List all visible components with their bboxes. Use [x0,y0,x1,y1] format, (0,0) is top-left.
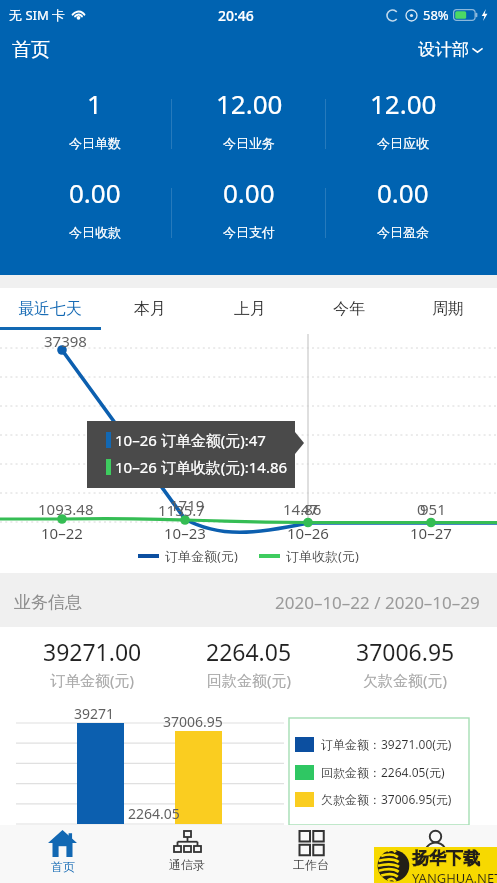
button[interactable]: 最近七天 [0,288,100,330]
staticText: 回款金额(元) [207,670,292,690]
staticText: 20:46 [218,6,254,25]
staticText: 1093.48 [38,499,94,519]
staticText: 订单收款(元) [286,547,359,565]
staticText: 首页 [51,859,75,874]
button[interactable]: 今年 [299,288,398,330]
staticText: 回款金额：2264.05(元) [321,764,445,780]
button[interactable]: 2264.05 [171,636,327,690]
staticText: 通信录 [169,857,205,872]
staticText: 订单金额(元) [50,670,135,690]
staticText: 本月 [134,299,166,319]
staticText: 951 [420,499,446,519]
staticText: 周期 [432,299,464,319]
button[interactable]: 39271.00 [14,636,171,690]
button[interactable]: 1 [17,86,172,158]
staticText: 上月 [234,299,266,319]
staticText: 无 SIM 卡 [9,6,66,24]
button[interactable]: 上月 [200,288,299,330]
staticText: 今日业务 [223,135,275,151]
staticText: 0.00 [69,175,121,210]
staticText: 37006.95 [356,636,455,667]
button[interactable]: 0.00 [326,175,480,247]
staticText: 订单金额：39271.00(元) [321,736,452,752]
staticText: 工作台 [293,857,329,872]
staticText: 欠款金额：37006.95(元) [321,791,452,807]
staticText: 10–27 [410,523,452,543]
staticText: 今日支付 [223,224,275,240]
staticText: 47 [301,499,319,519]
staticText: 今年 [333,299,365,319]
staticText: 39271.00 [43,636,142,667]
staticText: 业务信息 [14,592,82,613]
staticText: 12.00 [370,86,437,121]
staticText: 设计部 [418,39,469,60]
staticText: 订单金额(元) [165,547,238,565]
staticText: 10–26 订单收款(元):14.86 [115,457,288,477]
staticText: 首页 [12,38,50,62]
staticText: 0 [417,499,426,519]
staticText: YANGHUA.NET [412,869,497,883]
button[interactable]: 首页 [0,38,60,62]
staticText: 0.00 [223,175,275,210]
staticText: 最近七天 [18,299,82,319]
staticText: 58% [423,6,449,24]
button[interactable]: 周期 [398,288,497,330]
staticText: 今日应收 [377,135,429,151]
staticText: 2264.05 [128,804,180,823]
staticText: 今日盈余 [377,224,429,240]
staticText: 2264.05 [206,636,292,667]
button[interactable]: 0.00 [17,175,172,247]
staticText: 1719 [170,495,205,515]
staticText: 1135.7 [158,500,205,520]
staticText: 37398 [44,331,87,351]
button[interactable]: 37006.95 [327,636,483,690]
staticText: 10–26 订单金额(元):47 [115,430,266,450]
button[interactable]: 12.00 [326,86,480,158]
button[interactable]: 0.00 [172,175,326,247]
staticText: 12.00 [216,86,283,121]
staticText: 10–22 [41,523,83,543]
button[interactable]: Contacts [125,825,249,883]
staticText: 0.00 [377,175,429,210]
button[interactable]: 本月 [100,288,200,330]
button[interactable]: Workbench [249,825,373,883]
staticText: 欠款金额(元) [363,670,448,690]
button[interactable]: Profile [373,825,497,883]
staticText: 37006.95 [163,712,223,731]
staticText: 今日单数 [69,135,121,151]
staticText: 2020–10–22 / 2020–10–29 [275,591,480,614]
button[interactable]: Home [0,825,125,883]
staticText: 39271 [74,704,115,723]
staticText: 14.86 [283,499,322,519]
button[interactable]: 设计部 [408,39,497,60]
staticText: 10–26 [287,523,329,543]
staticText: 1 [87,86,102,121]
staticText: 今日收款 [69,224,121,240]
staticText: 我的 [423,857,447,872]
staticText: 10–23 [164,523,206,543]
button[interactable]: 12.00 [172,86,326,158]
staticText: 扬华下载 [412,848,480,869]
